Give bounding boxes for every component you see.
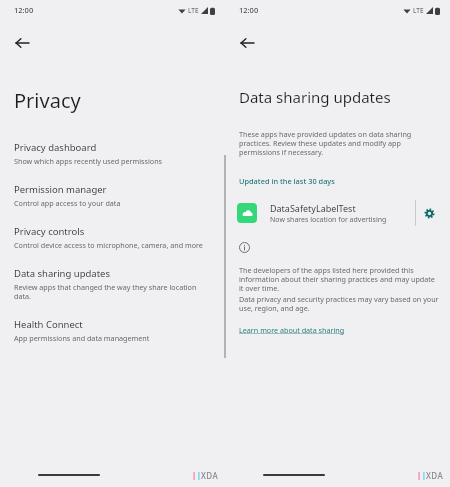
button[interactable]: Data sharing updates xyxy=(0,267,225,301)
staticText: LTE xyxy=(413,6,424,15)
staticText: App permissions and data management xyxy=(14,333,150,343)
staticText: XDA xyxy=(426,470,444,481)
staticText: DataSafetyLabelTest xyxy=(270,202,356,214)
staticText: Control app access to your data xyxy=(14,198,121,208)
staticText: Permission manager xyxy=(14,183,107,196)
staticText: Privacy controls xyxy=(14,225,85,238)
staticText: Updated in the last 30 days xyxy=(239,176,335,186)
other: Information xyxy=(239,242,250,253)
button[interactable]: Settings xyxy=(416,200,442,226)
staticText: Privacy dashboard xyxy=(14,141,97,154)
staticText: Privacy xyxy=(14,87,81,114)
button[interactable]: Privacy controls xyxy=(0,225,225,250)
button[interactable]: Learn more about data sharing xyxy=(239,325,345,335)
button[interactable]: Permission manager xyxy=(0,183,225,208)
button[interactable]: DataSafetyLabelTest xyxy=(225,200,450,226)
staticText: 12:00 xyxy=(239,5,259,15)
staticText: Show which apps recently used permission… xyxy=(14,156,163,166)
staticText: LTE xyxy=(188,6,199,15)
staticText: Learn more about data sharing xyxy=(239,325,345,335)
staticText: These apps have provided updates on data… xyxy=(239,129,428,158)
staticText: Review apps that changed the way they sh… xyxy=(14,282,203,301)
staticText: Data sharing updates xyxy=(14,267,111,280)
staticText: Health Connect xyxy=(14,318,83,331)
staticText: Data sharing updates xyxy=(239,87,391,107)
staticText: The developers of the apps listed here p… xyxy=(239,265,440,294)
staticText: XDA xyxy=(201,470,219,481)
staticText: 12:00 xyxy=(14,5,34,15)
staticText: Now shares location for advertising xyxy=(270,215,387,225)
button[interactable]: Back xyxy=(8,29,36,57)
button[interactable]: Health Connect xyxy=(0,318,225,343)
button[interactable]: Back xyxy=(233,29,261,57)
button[interactable]: Privacy dashboard xyxy=(0,141,225,166)
staticText: Data privacy and security practices may … xyxy=(239,294,440,314)
staticText: Control device access to microphone, cam… xyxy=(14,240,203,250)
